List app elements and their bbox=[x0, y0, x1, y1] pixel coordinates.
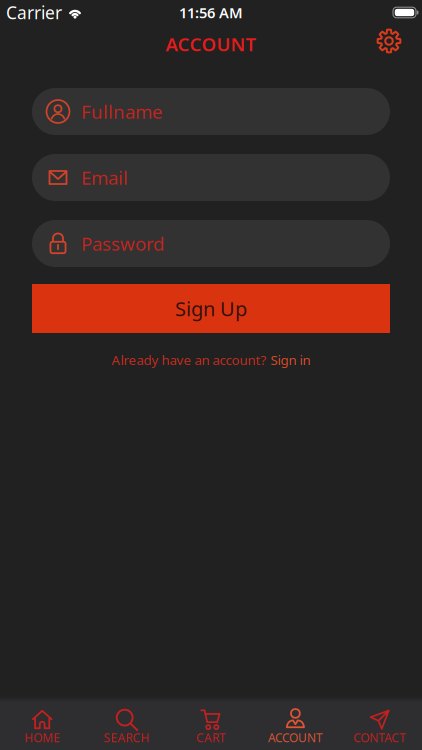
button[interactable]: ACCOUNT bbox=[253, 703, 338, 745]
staticText: Already have an account? bbox=[111, 351, 266, 369]
button[interactable]: Sign Up bbox=[32, 284, 390, 333]
staticText: Fullname bbox=[81, 99, 163, 124]
button[interactable]: Fullname bbox=[32, 88, 390, 135]
staticText: ACCOUNT bbox=[165, 32, 256, 56]
staticText: CONTACT bbox=[353, 729, 406, 745]
button[interactable]: Settings bbox=[377, 29, 401, 53]
button[interactable]: CONTACT bbox=[338, 703, 422, 745]
staticText: Sign in bbox=[270, 351, 310, 369]
staticText: ACCOUNT bbox=[268, 729, 323, 745]
button[interactable]: Email bbox=[32, 154, 390, 201]
button[interactable]: Already have an account? bbox=[111, 351, 310, 369]
button[interactable]: HOME bbox=[0, 703, 84, 745]
staticText: Email bbox=[81, 165, 128, 190]
button[interactable]: Password bbox=[32, 220, 390, 267]
button[interactable]: SEARCH bbox=[84, 703, 169, 745]
staticText: SEARCH bbox=[104, 729, 150, 745]
button[interactable]: CART bbox=[169, 703, 253, 745]
staticText: HOME bbox=[24, 729, 60, 745]
staticText: Carrier bbox=[6, 1, 62, 24]
staticText: Password bbox=[81, 231, 164, 256]
staticText: CART bbox=[196, 729, 226, 745]
staticText: 11:56 AM bbox=[179, 3, 243, 22]
staticText: Sign Up bbox=[175, 295, 247, 322]
